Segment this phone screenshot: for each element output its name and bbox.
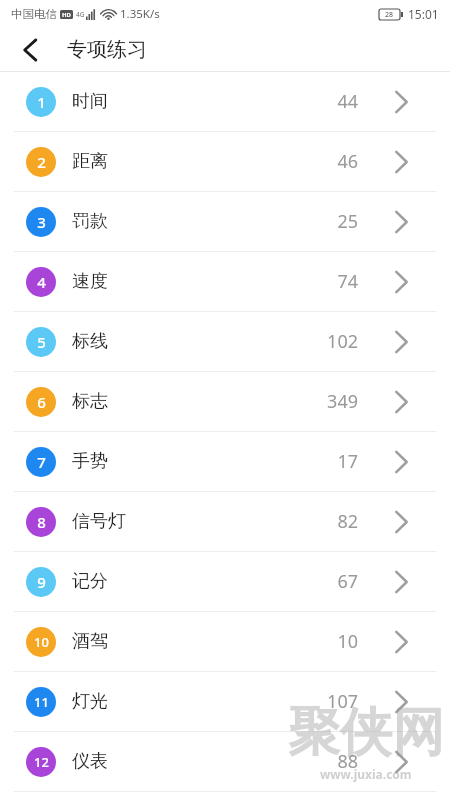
staticText: HD bbox=[62, 11, 71, 19]
staticText: 9 bbox=[37, 572, 46, 592]
button[interactable]: Back bbox=[12, 32, 48, 68]
staticText: 时间 bbox=[72, 90, 108, 113]
staticText: 5 bbox=[37, 332, 46, 352]
staticText: 8 bbox=[37, 512, 46, 532]
staticText: 12 bbox=[34, 753, 49, 771]
staticText: 4G bbox=[76, 10, 85, 19]
staticText: 349 bbox=[288, 389, 358, 414]
staticText: 102 bbox=[288, 329, 358, 354]
staticText: 28 bbox=[385, 10, 394, 20]
staticText: 11 bbox=[34, 693, 49, 711]
staticText: 专项练习 bbox=[67, 37, 147, 62]
button[interactable]: 11 bbox=[0, 672, 450, 732]
button[interactable]: 12 bbox=[0, 732, 450, 792]
staticText: 聚侠网 bbox=[288, 700, 444, 766]
button[interactable]: 5 bbox=[0, 312, 450, 372]
staticText: 25 bbox=[288, 209, 358, 234]
staticText: 1.35K/s bbox=[120, 6, 160, 22]
staticText: 17 bbox=[288, 449, 358, 474]
staticText: 灯光 bbox=[72, 690, 108, 713]
staticText: 2 bbox=[37, 152, 46, 172]
staticText: 7 bbox=[37, 452, 46, 472]
staticText: 15:01 bbox=[408, 6, 439, 22]
staticText: 信号灯 bbox=[72, 510, 126, 533]
staticText: 88 bbox=[288, 749, 358, 774]
button[interactable]: 10 bbox=[0, 612, 450, 672]
staticText: 罚款 bbox=[72, 210, 108, 233]
button[interactable]: 8 bbox=[0, 492, 450, 552]
staticText: 速度 bbox=[72, 270, 108, 293]
staticText: 107 bbox=[288, 689, 358, 714]
staticText: 44 bbox=[288, 89, 358, 114]
staticText: 82 bbox=[288, 509, 358, 534]
staticText: 仪表 bbox=[72, 750, 108, 773]
staticText: 1 bbox=[37, 92, 46, 112]
staticText: 10 bbox=[34, 633, 49, 651]
button[interactable]: 6 bbox=[0, 372, 450, 432]
staticText: 74 bbox=[288, 269, 358, 294]
staticText: 标志 bbox=[72, 390, 108, 413]
staticText: 46 bbox=[288, 149, 358, 174]
staticText: 标线 bbox=[72, 330, 108, 353]
staticText: 手势 bbox=[72, 450, 108, 473]
button[interactable]: 4 bbox=[0, 252, 450, 312]
staticText: 记分 bbox=[72, 570, 108, 593]
staticText: 6 bbox=[37, 392, 46, 412]
button[interactable]: 1 bbox=[0, 72, 450, 132]
staticText: 10 bbox=[288, 629, 358, 654]
staticText: 距离 bbox=[72, 150, 108, 173]
staticText: 中国电信 bbox=[11, 7, 57, 21]
button[interactable]: 9 bbox=[0, 552, 450, 612]
staticText: www.juxia.com bbox=[320, 766, 412, 782]
staticText: 4 bbox=[37, 272, 46, 292]
button[interactable]: 2 bbox=[0, 132, 450, 192]
staticText: 3 bbox=[37, 212, 46, 232]
button[interactable]: 3 bbox=[0, 192, 450, 252]
staticText: 酒驾 bbox=[72, 630, 108, 653]
staticText: 67 bbox=[288, 569, 358, 594]
button[interactable]: 7 bbox=[0, 432, 450, 492]
